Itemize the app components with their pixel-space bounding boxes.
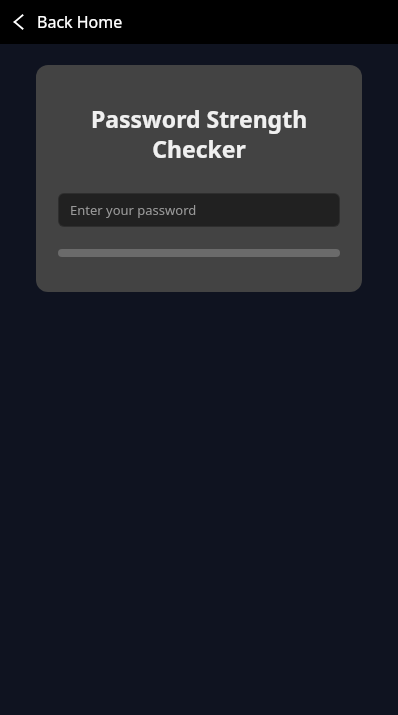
- staticText: Enter your password: [70, 201, 197, 219]
- other: Back: [8, 11, 30, 33]
- button[interactable]: Back: [0, 0, 398, 44]
- staticText: Password Strength Checker: [58, 103, 340, 164]
- staticText: Back Home: [37, 11, 123, 33]
- button[interactable]: Enter your password: [59, 194, 339, 226]
